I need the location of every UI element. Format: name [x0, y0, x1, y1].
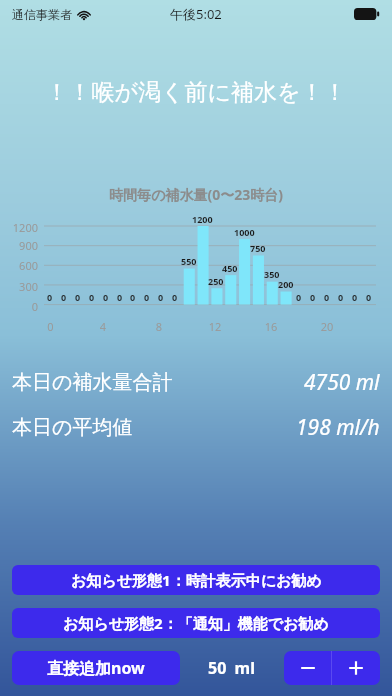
- staticText: 600: [0, 258, 38, 273]
- staticText: 4: [96, 319, 110, 334]
- staticText: 0: [310, 291, 316, 303]
- button[interactable]: Decrease amount: [284, 651, 331, 685]
- staticText: ！！喉が渇く前に補水を！！: [0, 78, 392, 107]
- staticText: 450: [222, 262, 238, 274]
- staticText: 750: [250, 242, 266, 254]
- staticText: 直接追加now: [47, 657, 145, 679]
- staticText: 198 ml/h: [296, 413, 380, 442]
- staticText: 0: [366, 291, 372, 303]
- staticText: 200: [278, 278, 294, 290]
- staticText: 通信事業者: [12, 7, 72, 22]
- staticText: 0: [75, 291, 81, 303]
- staticText: 350: [264, 268, 280, 280]
- staticText: 0: [117, 291, 123, 303]
- staticText: 本日の平均値: [12, 415, 133, 440]
- staticText: 1000: [234, 226, 255, 238]
- button[interactable]: 直接追加now: [12, 651, 180, 685]
- staticText: 0: [296, 291, 302, 303]
- staticText: お知らせ形態2：「通知」機能でお勧め: [63, 613, 329, 633]
- staticText: 0: [338, 291, 344, 303]
- staticText: 12: [208, 319, 222, 334]
- staticText: 50 ml: [208, 657, 255, 679]
- staticText: 時間毎の補水量(0〜23時台): [0, 185, 392, 204]
- staticText: 0: [144, 291, 150, 303]
- staticText: 0: [0, 299, 38, 314]
- staticText: 1200: [192, 213, 213, 225]
- button[interactable]: お知らせ形態2：「通知」機能でお勧め: [12, 608, 380, 638]
- button[interactable]: Increase amount: [332, 651, 380, 685]
- staticText: 0: [324, 291, 330, 303]
- staticText: 0: [172, 291, 178, 303]
- staticText: 午後5:02: [170, 5, 222, 23]
- staticText: 0: [103, 291, 109, 303]
- staticText: お知らせ形態1：時計表示中にお勧め: [71, 570, 322, 590]
- staticText: 900: [0, 238, 38, 253]
- staticText: 本日の補水量合計: [12, 370, 173, 395]
- staticText: 0: [130, 291, 136, 303]
- staticText: 20: [320, 319, 334, 334]
- staticText: 300: [0, 279, 38, 294]
- staticText: 0: [158, 291, 164, 303]
- staticText: 1200: [0, 220, 38, 232]
- staticText: 550: [181, 255, 197, 267]
- staticText: 8: [152, 319, 166, 334]
- staticText: 0: [352, 291, 358, 303]
- staticText: 0: [47, 291, 53, 303]
- staticText: 0: [44, 319, 57, 334]
- button[interactable]: お知らせ形態1：時計表示中にお勧め: [12, 565, 380, 595]
- staticText: 4750 ml: [304, 368, 380, 397]
- staticText: 16: [264, 319, 278, 334]
- staticText: 0: [61, 291, 67, 303]
- staticText: 250: [208, 275, 224, 287]
- staticText: 0: [89, 291, 95, 303]
